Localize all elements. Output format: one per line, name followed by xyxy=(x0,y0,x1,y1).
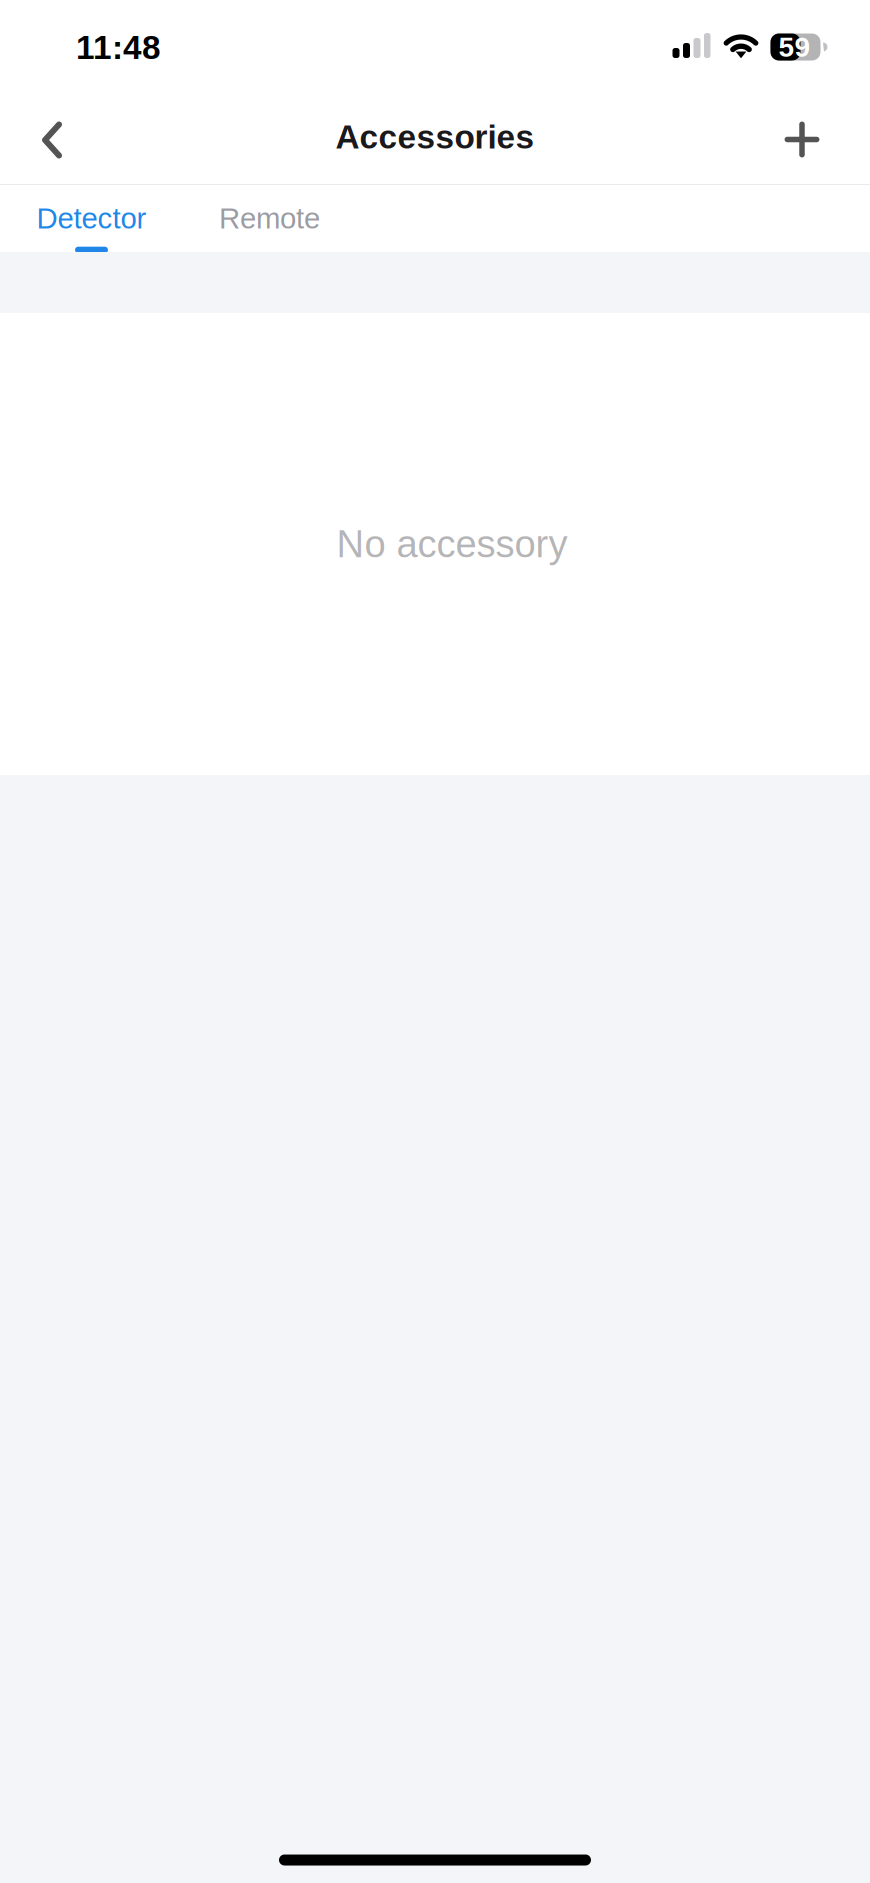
staticText: Accessories xyxy=(335,118,534,156)
staticText: 11:48 xyxy=(76,29,161,66)
staticText: Remote xyxy=(219,202,320,235)
staticText: Detector xyxy=(36,202,146,235)
button[interactable]: Detector xyxy=(0,185,183,252)
staticText: No accessory xyxy=(336,523,567,565)
button[interactable]: Add accessory xyxy=(760,90,844,184)
staticText: 59 xyxy=(778,31,810,63)
button[interactable]: Back xyxy=(10,90,94,184)
button[interactable]: Remote xyxy=(183,185,356,252)
